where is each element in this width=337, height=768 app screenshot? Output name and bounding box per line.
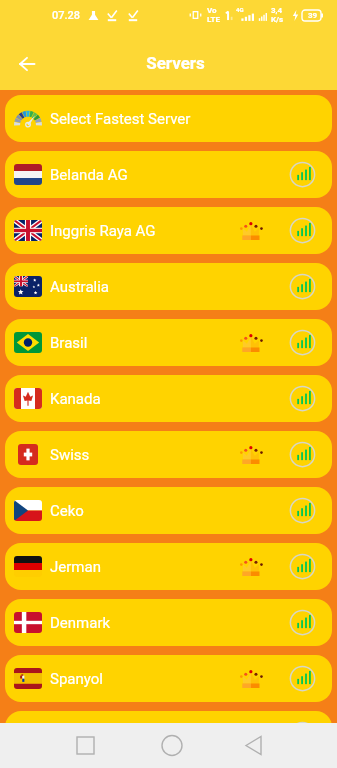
staticText: K/s	[271, 15, 284, 24]
staticText: Kanada	[50, 390, 101, 408]
staticText: 07.28	[52, 9, 81, 22]
staticText: Servers	[7, 53, 337, 73]
staticText: Inggris Raya AG	[50, 222, 156, 240]
button[interactable]: Brasil	[5, 319, 332, 366]
staticText: 39	[308, 11, 318, 20]
button[interactable]: Swiss	[5, 431, 332, 478]
staticText: Swiss	[50, 446, 90, 464]
button[interactable]: Spanyol	[5, 655, 332, 702]
staticText: Finlandia	[50, 726, 111, 744]
staticText: 4G	[236, 6, 244, 13]
button[interactable]: Select Fastest Server	[5, 95, 332, 142]
staticText: Select Fastest Server	[50, 110, 191, 128]
button[interactable]: Denmark	[5, 599, 332, 646]
staticText: Denmark	[50, 614, 111, 632]
button[interactable]: Jerman	[5, 543, 332, 590]
staticText: LTE	[207, 15, 220, 24]
button[interactable]: Ceko	[5, 487, 332, 534]
button[interactable]: Inggris Raya AG	[5, 207, 332, 254]
button[interactable]: Belanda AG	[5, 151, 332, 198]
staticText: Australia	[50, 278, 110, 296]
staticText: Vo	[207, 6, 217, 15]
staticText: Brasil	[50, 334, 88, 352]
staticText: 3,4	[271, 6, 283, 15]
button[interactable]: Back	[9, 46, 44, 81]
staticText: Jerman	[50, 558, 101, 576]
button[interactable]: Australia	[5, 263, 332, 310]
staticText: Ceko	[50, 502, 84, 520]
button[interactable]: Finlandia	[5, 711, 332, 758]
staticText: Belanda AG	[50, 166, 128, 184]
button[interactable]: Kanada	[5, 375, 332, 422]
staticText: Spanyol	[50, 670, 103, 688]
